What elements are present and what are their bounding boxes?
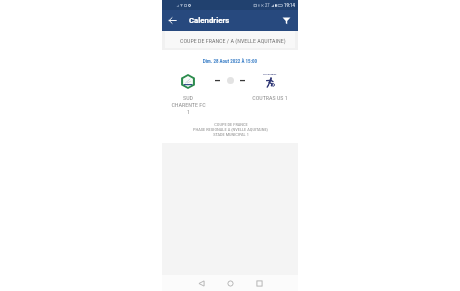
staticText: US COUTRAS: [263, 73, 277, 76]
button[interactable]: Back: [193, 275, 209, 291]
staticText: CHARENTE FC: [171, 101, 206, 108]
button[interactable]: Home: [222, 275, 238, 291]
staticText: 27: [265, 3, 270, 8]
staticText: SUD: [183, 94, 193, 101]
staticText: Dim. 28 Aout 2022 À 15:00: [203, 58, 258, 64]
button[interactable]: Dim. 28 Aout 2022 À 15:00: [162, 50, 298, 143]
staticText: COUTRAS US 1: [245, 94, 295, 101]
staticText: STADE MUNICIPAL 1: [213, 132, 249, 137]
staticText: 19:14: [284, 2, 295, 8]
button[interactable]: COUPE DE FRANCE / A (NVELLE AQUITAINE): [165, 31, 295, 48]
staticText: Calendriers: [189, 16, 230, 25]
button[interactable]: Filter: [278, 12, 295, 29]
button[interactable]: Recent apps: [251, 275, 267, 291]
staticText: COUPE DE FRANCE / A (NVELLE AQUITAINE): [180, 37, 286, 44]
staticText: COUPE DE FRANCE: [214, 122, 248, 127]
staticText: 1: [187, 108, 190, 115]
button[interactable]: Back: [164, 12, 181, 29]
staticText: PHASE REGIONALE A (NVELLE AQUITAINE): [193, 127, 268, 132]
